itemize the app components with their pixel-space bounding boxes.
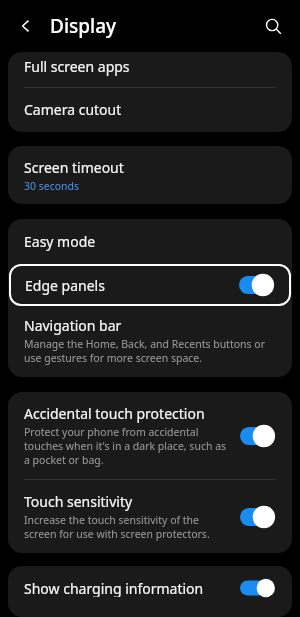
button[interactable]: Back <box>12 12 40 40</box>
staticText: Navigation bar <box>24 316 122 335</box>
staticText: 30 seconds <box>24 179 80 193</box>
button[interactable]: Toggle <box>240 579 278 597</box>
button[interactable]: Full screen apps <box>8 53 292 87</box>
button[interactable]: Easy mode <box>8 219 292 264</box>
button[interactable]: Edge panels <box>9 264 291 306</box>
staticText: Touch sensitivity <box>24 492 133 511</box>
staticText: Increase the touch sensitivity of the sc… <box>24 513 232 541</box>
button[interactable]: Search <box>258 11 288 41</box>
button[interactable]: Camera cutout <box>8 88 292 132</box>
staticText: Screen timeout <box>24 158 124 177</box>
button[interactable]: Toggle <box>240 506 278 528</box>
staticText: Camera cutout <box>24 100 122 119</box>
button[interactable]: Show charging information <box>8 566 292 617</box>
staticText: Accidental touch protection <box>24 404 205 423</box>
button[interactable]: Navigation bar <box>8 306 292 377</box>
staticText: Show charging information <box>24 579 204 597</box>
button[interactable]: Touch sensitivity <box>8 480 292 553</box>
staticText: Display <box>50 13 117 39</box>
button[interactable]: Screen timeout <box>8 146 292 204</box>
button[interactable]: Accidental touch protection <box>8 392 292 479</box>
staticText: Manage the Home, Back, and Recents butto… <box>24 337 278 365</box>
staticText: Easy mode <box>24 232 96 251</box>
button[interactable]: Toggle <box>239 274 277 296</box>
staticText: Full screen apps <box>24 57 130 76</box>
button[interactable]: Toggle <box>240 425 278 447</box>
staticText: Protect your phone from accidental touch… <box>24 425 232 467</box>
staticText: Edge panels <box>25 276 105 295</box>
